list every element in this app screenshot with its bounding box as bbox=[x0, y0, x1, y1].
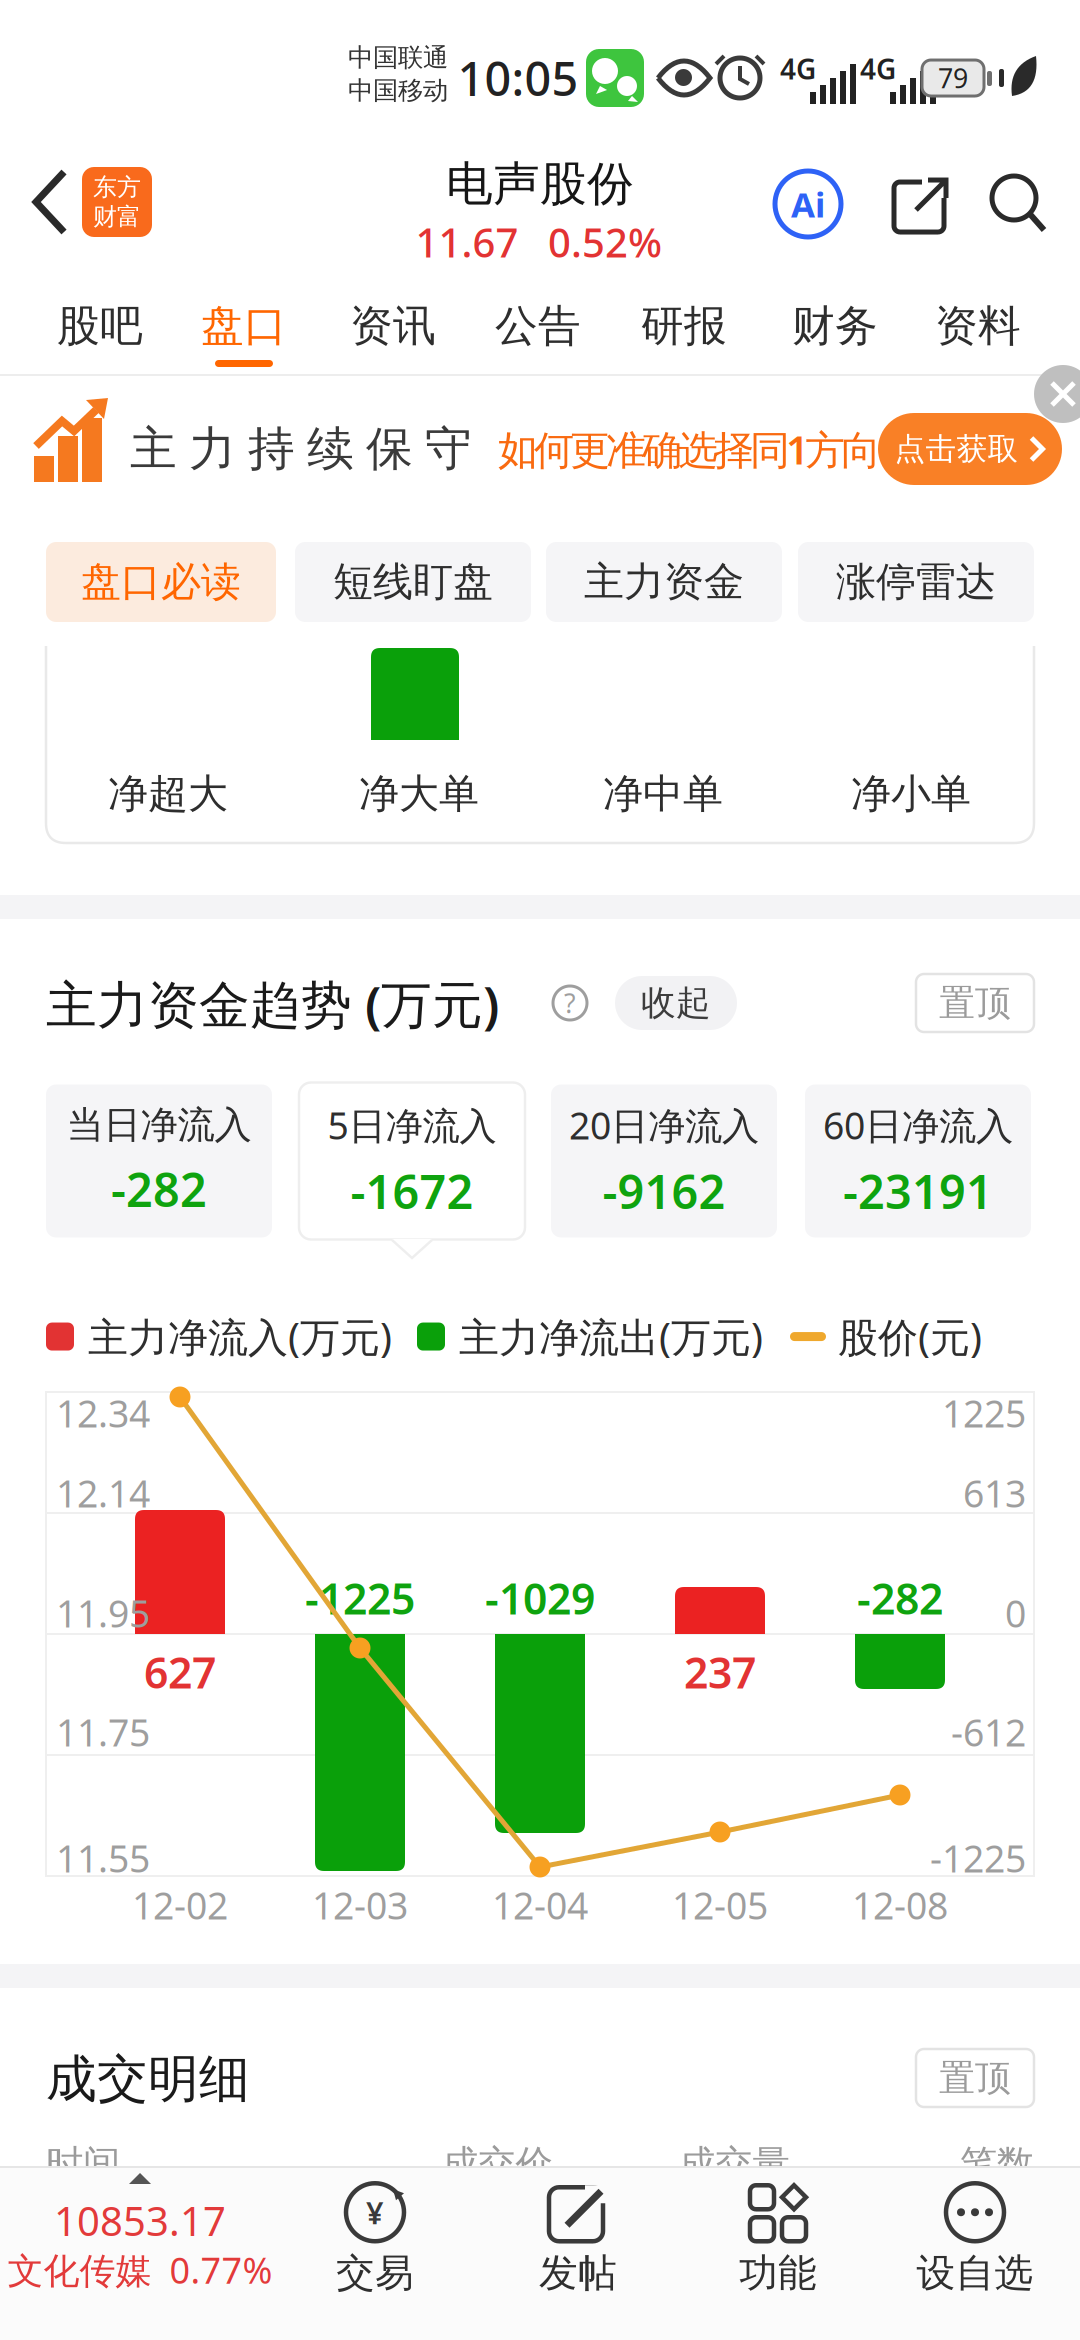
staticText: 主力资金趋势 (万元) bbox=[46, 970, 499, 1037]
staticText: 设自选 bbox=[916, 2249, 1033, 2297]
staticText: 627 bbox=[144, 1644, 216, 1700]
staticText: 文化传媒 0.77% bbox=[7, 2246, 272, 2294]
staticText: 交易 bbox=[336, 2249, 414, 2297]
button[interactable]: ¥ bbox=[290, 2175, 460, 2305]
staticText: 237 bbox=[684, 1644, 756, 1700]
staticText: ¥ bbox=[366, 2192, 384, 2233]
button[interactable]: 5日净流入 bbox=[299, 1082, 525, 1239]
staticText: 0 bbox=[1005, 1588, 1026, 1638]
staticText: 11.67 bbox=[415, 215, 518, 268]
staticText: 资料 bbox=[935, 300, 1021, 352]
button[interactable]: 功能 bbox=[693, 2175, 863, 2305]
button[interactable]: 10853.17 bbox=[0, 2168, 280, 2298]
button[interactable]: 公告 bbox=[473, 281, 603, 371]
staticText: -282 bbox=[111, 1158, 207, 1220]
button[interactable]: 财务 bbox=[770, 281, 900, 371]
button[interactable]: Help bbox=[553, 985, 587, 1021]
button[interactable]: 资讯 bbox=[328, 281, 458, 371]
button[interactable]: Share bbox=[894, 176, 950, 234]
staticText: 股吧 bbox=[57, 300, 143, 352]
staticText: 置顶 bbox=[939, 981, 1011, 1025]
staticText: 资讯 bbox=[350, 300, 436, 352]
button[interactable]: 短线盯盘 bbox=[295, 542, 531, 622]
staticText: 11.75 bbox=[56, 1707, 150, 1757]
button[interactable]: AI助手 bbox=[775, 171, 841, 237]
button[interactable]: Search bbox=[992, 176, 1046, 234]
staticText: 功能 bbox=[739, 2249, 817, 2297]
staticText: -282 bbox=[857, 1570, 943, 1626]
staticText: 研报 bbox=[641, 300, 727, 352]
staticText: 发帖 bbox=[539, 2249, 617, 2297]
staticText: 60日净流入 bbox=[823, 1100, 1013, 1150]
staticText: 中国移动 bbox=[348, 75, 448, 106]
button[interactable]: 研报 bbox=[619, 281, 749, 371]
staticText: 1225 bbox=[942, 1388, 1026, 1438]
staticText: 如何更准确选择同1方向 bbox=[498, 422, 881, 475]
staticText: 12-02 bbox=[132, 1880, 228, 1930]
staticText: -23191 bbox=[843, 1160, 993, 1222]
button[interactable]: Back bbox=[30, 166, 74, 238]
staticText: 盘口 bbox=[201, 300, 287, 352]
staticText: 股价(元) bbox=[838, 1310, 982, 1363]
staticText: 时间 bbox=[46, 2141, 120, 2187]
staticText: 613 bbox=[963, 1468, 1026, 1518]
staticText: 5日净流入 bbox=[327, 1100, 496, 1150]
staticText: 东方 bbox=[93, 172, 141, 202]
staticText: 主力净流出(万元) bbox=[459, 1310, 763, 1363]
staticText: 置顶 bbox=[939, 2056, 1011, 2100]
staticText: 12-04 bbox=[492, 1880, 588, 1930]
staticText: 10:05 bbox=[457, 47, 578, 109]
staticText: -1672 bbox=[350, 1160, 473, 1222]
staticText: -1225 bbox=[305, 1570, 415, 1626]
staticText: 当日净流入 bbox=[66, 1102, 251, 1148]
button[interactable]: 盘口必读 bbox=[46, 542, 276, 622]
staticText: 收起 bbox=[641, 982, 711, 1024]
staticText: 电声股份 bbox=[446, 155, 634, 213]
button[interactable]: 股吧 bbox=[35, 281, 165, 371]
staticText: 主力持续保守 bbox=[130, 420, 472, 478]
staticText: ? bbox=[564, 985, 576, 1021]
staticText: 净大单 bbox=[359, 769, 479, 818]
staticText: 11.55 bbox=[56, 1833, 150, 1883]
button[interactable]: 60日净流入 bbox=[805, 1084, 1031, 1237]
button[interactable]: 设自选 bbox=[890, 2175, 1060, 2305]
staticText: 成交量 bbox=[678, 2141, 789, 2187]
staticText: -9162 bbox=[602, 1160, 725, 1222]
staticText: 盘口必读 bbox=[81, 557, 241, 606]
button[interactable]: 收起 bbox=[615, 976, 737, 1030]
staticText: 净小单 bbox=[851, 769, 971, 818]
button[interactable]: 20日净流入 bbox=[551, 1084, 777, 1237]
staticText: 笔数 bbox=[960, 2141, 1034, 2187]
staticText: 公告 bbox=[495, 300, 581, 352]
button[interactable]: 资料 bbox=[913, 281, 1043, 371]
staticText: 点击获取 bbox=[894, 430, 1018, 468]
staticText: -612 bbox=[951, 1707, 1026, 1757]
staticText: Ai bbox=[791, 181, 825, 227]
button[interactable]: 置顶 bbox=[916, 974, 1034, 1032]
staticText: 涨停雷达 bbox=[836, 557, 996, 606]
button[interactable]: Close bbox=[1034, 365, 1080, 423]
staticText: 10853.17 bbox=[54, 2194, 226, 2247]
button[interactable]: 涨停雷达 bbox=[798, 542, 1034, 622]
staticText: 中国联通 bbox=[348, 42, 448, 73]
staticText: -1029 bbox=[485, 1570, 595, 1626]
staticText: 12-08 bbox=[852, 1880, 948, 1930]
staticText: 主力资金 bbox=[584, 557, 744, 606]
button[interactable]: 点击获取 bbox=[878, 413, 1062, 485]
button[interactable]: 东方财富 bbox=[82, 167, 152, 237]
button[interactable]: 主力资金 bbox=[546, 542, 782, 622]
staticText: 12.14 bbox=[56, 1468, 150, 1518]
staticText: 净超大 bbox=[108, 769, 228, 818]
button[interactable]: 盘口 bbox=[179, 281, 309, 371]
button[interactable]: 置顶 bbox=[916, 2049, 1034, 2107]
staticText: 财务 bbox=[792, 300, 878, 352]
staticText: 11.95 bbox=[56, 1588, 150, 1638]
staticText: 12-03 bbox=[312, 1880, 408, 1930]
button[interactable]: 发帖 bbox=[493, 2175, 663, 2305]
staticText: 4G bbox=[860, 50, 896, 87]
staticText: 12-05 bbox=[672, 1880, 768, 1930]
staticText: 净中单 bbox=[603, 769, 723, 818]
button[interactable]: 当日净流入 bbox=[46, 1084, 272, 1237]
staticText: 成交明细 bbox=[46, 2048, 250, 2110]
staticText: 0.52% bbox=[548, 215, 662, 268]
